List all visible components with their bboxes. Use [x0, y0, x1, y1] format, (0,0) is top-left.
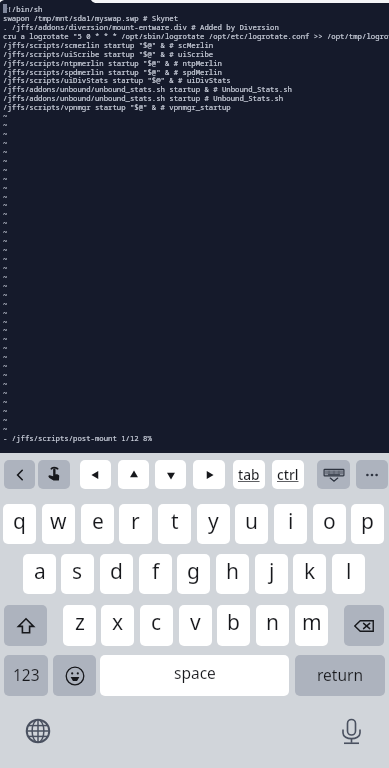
staticText: /jffs/scripts/ntpmerlin startup "$@" & #… — [3, 58, 222, 68]
button[interactable]: y — [197, 504, 230, 544]
button[interactable]: c — [140, 605, 173, 646]
button[interactable]: k — [293, 554, 326, 594]
staticText: k — [304, 557, 316, 586]
staticText: ~ — [3, 183, 8, 193]
button[interactable]: ctrl — [272, 460, 304, 489]
button[interactable]: Hide keyboard — [317, 460, 350, 489]
staticText: ~ — [3, 138, 8, 148]
button[interactable]: d — [100, 554, 133, 594]
button[interactable]: Down — [155, 460, 186, 489]
staticText: w — [50, 507, 67, 536]
staticText: a — [34, 557, 46, 586]
staticText: ~ — [3, 290, 8, 300]
staticText: ~ — [3, 263, 8, 273]
staticText: z — [75, 608, 85, 637]
button[interactable]: x — [101, 605, 134, 646]
button[interactable]: j — [255, 554, 288, 594]
staticText: ~ — [3, 334, 8, 344]
staticText: ~ — [3, 218, 8, 228]
button[interactable]: Voice input — [333, 713, 369, 749]
button[interactable]: h — [216, 554, 249, 594]
staticText: i — [288, 507, 294, 536]
button[interactable]: i — [274, 504, 307, 544]
button[interactable]: g — [177, 554, 210, 594]
button[interactable]: 123 — [4, 655, 48, 696]
staticText: m — [302, 608, 322, 637]
button[interactable]: v — [179, 605, 212, 646]
staticText: u — [245, 507, 258, 536]
button[interactable]: a — [23, 554, 56, 594]
button[interactable]: o — [313, 504, 346, 544]
staticText: ~ — [3, 245, 8, 255]
button[interactable]: n — [256, 605, 289, 646]
staticText: ~ — [3, 174, 8, 184]
button[interactable]: s — [61, 554, 94, 594]
button[interactable]: space — [100, 655, 289, 696]
button[interactable]: tab — [233, 460, 265, 489]
button[interactable]: More options — [356, 460, 388, 489]
staticText: ~ — [3, 397, 8, 407]
staticText: ~ — [3, 200, 8, 210]
button[interactable]: p — [351, 504, 384, 544]
staticText: ~ — [3, 343, 8, 353]
staticText: /jffs/scripts/spdmerlin startup "$@" & #… — [3, 67, 222, 77]
button[interactable]: w — [42, 504, 75, 544]
button[interactable]: m — [295, 605, 328, 646]
staticText: y — [208, 507, 219, 536]
staticText: h — [226, 557, 239, 586]
button[interactable]: Right — [193, 460, 225, 489]
staticText: ~ — [3, 325, 8, 335]
button[interactable]: z — [63, 605, 96, 646]
staticText: return — [317, 664, 363, 685]
button[interactable]: Emoji — [53, 655, 96, 696]
button[interactable]: Back — [4, 460, 35, 489]
staticText: ~ — [3, 209, 8, 219]
button[interactable]: l — [332, 554, 365, 594]
button[interactable]: Change keyboard — [20, 713, 56, 749]
staticText: v — [190, 608, 201, 637]
staticText: j — [269, 557, 275, 586]
staticText: b — [227, 608, 240, 637]
staticText: r — [131, 507, 140, 536]
staticText: /jffs/scripts/vpnmgr startup "$@" & # vp… — [3, 102, 231, 112]
staticText: ~ — [3, 147, 8, 157]
staticText: tab — [238, 465, 260, 484]
staticText: ~ — [3, 156, 8, 166]
button[interactable]: Up — [118, 460, 149, 489]
button[interactable]: r — [119, 504, 152, 544]
staticText: d — [110, 557, 123, 586]
staticText: . /jffs/addons/diversion/mount-entware.d… — [3, 22, 279, 32]
staticText: ~ — [3, 361, 8, 371]
staticText: p — [361, 507, 374, 536]
staticText: l — [346, 557, 352, 586]
staticText: ~ — [3, 129, 8, 139]
staticText: x — [112, 608, 124, 637]
staticText: ~ — [3, 254, 8, 264]
staticText: t — [171, 507, 179, 536]
staticText: ~ — [3, 299, 8, 309]
button[interactable]: t — [158, 504, 191, 544]
button[interactable]: f — [139, 554, 172, 594]
staticText: ctrl — [277, 465, 299, 484]
button[interactable]: u — [235, 504, 268, 544]
staticText: cru a logrotate "5 0 * * * /opt/sbin/log… — [3, 31, 389, 41]
staticText: #!/bin/sh — [3, 4, 43, 14]
staticText: ~ — [3, 317, 8, 327]
staticText: c — [151, 608, 162, 637]
staticText: /jffs/addons/unbound/unbound_stats.sh st… — [3, 84, 292, 94]
staticText: ~ — [3, 308, 8, 318]
staticText: 123 — [13, 664, 40, 685]
staticText: ~ — [3, 379, 8, 389]
button[interactable]: Touch mode — [38, 460, 70, 489]
button[interactable]: Backspace — [344, 605, 384, 646]
button[interactable]: Left — [80, 460, 111, 489]
staticText: ~ — [3, 227, 8, 237]
staticText: o — [323, 507, 336, 536]
button[interactable]: return — [295, 655, 385, 696]
button[interactable]: e — [81, 504, 114, 544]
button[interactable]: Shift — [4, 605, 47, 646]
button[interactable]: b — [217, 605, 250, 646]
button[interactable]: q — [3, 504, 36, 544]
staticText: s — [72, 557, 83, 586]
staticText: e — [92, 507, 104, 536]
